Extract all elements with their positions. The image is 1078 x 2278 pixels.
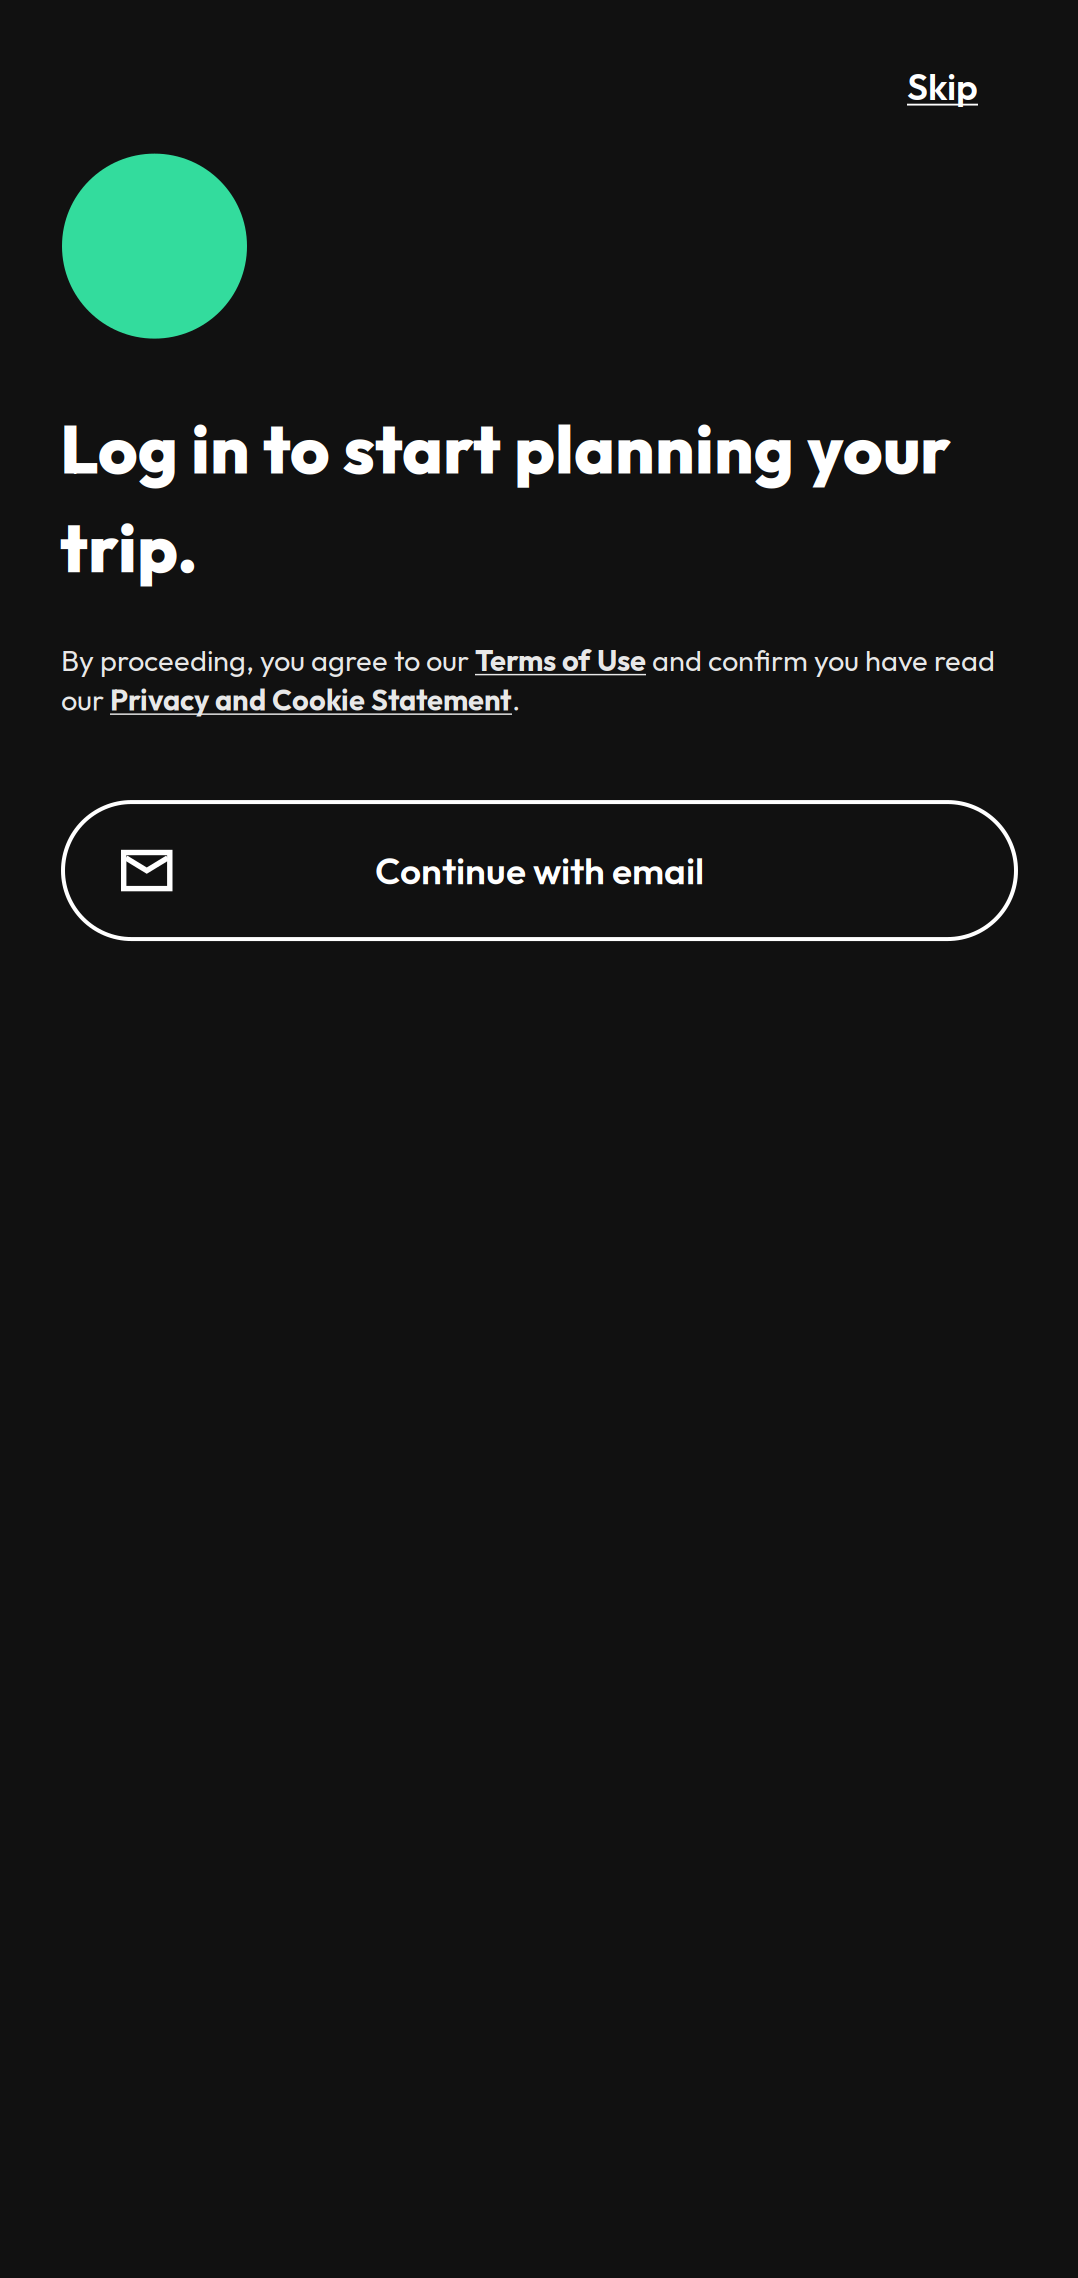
staticText: By proceeding, you agree to our Terms of… [61, 642, 995, 718]
staticText: Skip [907, 63, 978, 110]
button[interactable]: Skip [863, 23, 1078, 143]
staticText: Log in to start planning your trip. [60, 406, 951, 590]
button[interactable]: Continue with email [63, 802, 1016, 939]
staticText: Continue with email [375, 847, 704, 894]
